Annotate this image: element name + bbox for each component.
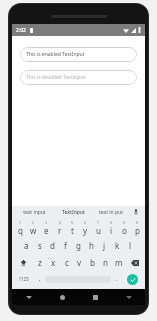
staticText: text input: [23, 209, 46, 216]
staticText: 7: [97, 220, 100, 225]
staticText: a: [24, 240, 29, 251]
staticText: 3: [45, 220, 48, 225]
button[interactable]: 8: [105, 218, 118, 237]
button[interactable]: x: [47, 254, 60, 271]
button[interactable]: 3: [40, 218, 53, 237]
button[interactable]: text input: [15, 206, 54, 218]
button[interactable]: 6: [79, 218, 92, 237]
staticText: d: [50, 240, 55, 251]
staticText: 2: [32, 220, 35, 225]
button[interactable]: 0: [131, 218, 144, 237]
staticText: h: [89, 240, 94, 251]
button[interactable]: b: [86, 254, 99, 271]
staticText: 0: [136, 220, 139, 225]
staticText: o: [122, 225, 127, 236]
button[interactable]: 2: [27, 218, 40, 237]
button[interactable]: This is disabled TextInput: [20, 70, 137, 85]
button[interactable]: .: [111, 271, 122, 287]
button[interactable]: text in put: [92, 206, 130, 218]
staticText: c: [65, 257, 69, 268]
button[interactable]: h: [85, 237, 98, 254]
staticText: z: [38, 257, 42, 268]
staticText: i: [110, 225, 113, 236]
button[interactable]: d: [46, 237, 59, 254]
button[interactable]: l: [124, 237, 137, 254]
staticText: 8: [110, 220, 113, 225]
staticText: b: [90, 257, 95, 268]
button[interactable]: v: [73, 254, 86, 271]
button[interactable]: Hide keyboard: [12, 289, 46, 305]
staticText: k: [115, 240, 120, 251]
button[interactable]: Enter: [127, 274, 138, 285]
staticText: q: [18, 225, 23, 236]
button[interactable]: This is enabled TextInput: [20, 47, 137, 62]
staticText: l: [129, 240, 132, 251]
staticText: f: [64, 240, 67, 251]
button[interactable]: 7: [92, 218, 105, 237]
button[interactable]: 9: [118, 218, 131, 237]
staticText: 2:02: [16, 27, 26, 34]
button[interactable]: Voice input: [130, 206, 142, 218]
staticText: .: [116, 275, 118, 283]
button[interactable]: c: [60, 254, 73, 271]
staticText: p: [135, 225, 140, 236]
staticText: t: [71, 225, 74, 236]
button[interactable]: s: [33, 237, 46, 254]
staticText: u: [96, 225, 101, 236]
button[interactable]: j: [98, 237, 111, 254]
button[interactable]: g: [72, 237, 85, 254]
staticText: w: [30, 225, 37, 236]
button[interactable]: Recents: [79, 289, 112, 305]
staticText: 1: [19, 220, 22, 225]
staticText: g: [76, 240, 81, 251]
button[interactable]: z: [33, 254, 47, 271]
button[interactable]: n: [99, 254, 112, 271]
staticText: text in put: [99, 209, 123, 216]
staticText: v: [77, 257, 82, 268]
button[interactable]: 4: [53, 218, 66, 237]
button[interactable]: 5: [66, 218, 79, 237]
staticText: This is disabled TextInput: [26, 74, 86, 81]
button[interactable]: ,: [34, 271, 45, 287]
button[interactable]: Home: [46, 289, 79, 305]
button[interactable]: m: [112, 254, 125, 271]
staticText: ,: [39, 275, 41, 283]
staticText: TextInput: [62, 209, 85, 216]
staticText: r: [58, 225, 62, 236]
button[interactable]: f: [59, 237, 72, 254]
button[interactable]: a: [20, 237, 33, 254]
staticText: 5: [71, 220, 74, 225]
button[interactable]: TextInput: [54, 206, 92, 218]
staticText: m: [115, 257, 123, 268]
staticText: 9: [123, 220, 126, 225]
staticText: y: [83, 225, 88, 236]
staticText: x: [51, 257, 56, 268]
staticText: ?123: [19, 276, 29, 282]
staticText: 6: [84, 220, 87, 225]
staticText: j: [103, 240, 106, 251]
staticText: n: [103, 257, 108, 268]
staticText: e: [44, 225, 49, 236]
button[interactable]: Backspace: [125, 254, 144, 271]
staticText: This is enabled TextInput: [26, 51, 85, 58]
staticText: s: [38, 240, 42, 251]
button[interactable]: Dismiss: [112, 289, 145, 305]
button[interactable]: ?123: [14, 271, 34, 287]
staticText: 4: [59, 220, 62, 225]
button[interactable]: Shift: [13, 254, 33, 271]
button[interactable]: k: [111, 237, 124, 254]
button[interactable]: 1: [13, 218, 27, 237]
